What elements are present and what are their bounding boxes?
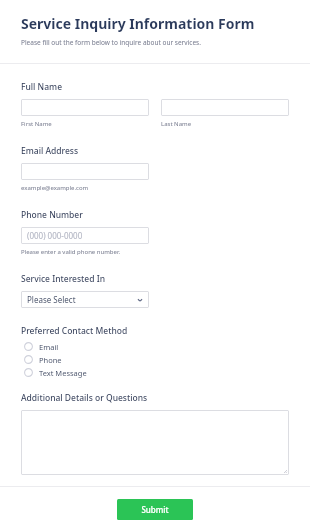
button[interactable]: Email xyxy=(21,340,289,353)
staticText: Email xyxy=(39,342,59,352)
staticText: Full Name xyxy=(21,81,63,93)
staticText: Phone xyxy=(39,355,62,365)
staticText: example@example.com xyxy=(21,184,89,192)
button[interactable]: Please Select xyxy=(21,291,149,308)
button[interactable] xyxy=(21,410,289,475)
staticText: Phone Number xyxy=(21,209,83,221)
staticText: Text Message xyxy=(39,368,87,378)
staticText: Please Select xyxy=(27,294,137,305)
staticText: Please enter a valid phone number. xyxy=(21,248,121,256)
staticText: Please fill out the form below to inquir… xyxy=(21,38,201,47)
button[interactable] xyxy=(21,163,149,180)
button[interactable]: Submit xyxy=(117,499,193,520)
staticText: Last Name xyxy=(161,120,192,128)
staticText: Service Interested In xyxy=(21,273,106,285)
button[interactable]: Phone xyxy=(21,353,289,366)
staticText: Preferred Contact Method xyxy=(21,325,128,337)
staticText: Service Inquiry Information Form xyxy=(21,14,255,33)
staticText: Additional Details or Questions xyxy=(21,392,148,404)
button[interactable] xyxy=(161,99,289,116)
button[interactable]: (000) 000-0000 xyxy=(21,227,149,244)
staticText: (000) 000-0000 xyxy=(27,230,83,241)
staticText: Submit xyxy=(141,504,169,515)
button[interactable]: Text Message xyxy=(21,366,289,379)
staticText: Email Address xyxy=(21,145,79,157)
staticText: First Name xyxy=(21,120,52,128)
button[interactable] xyxy=(21,99,149,116)
